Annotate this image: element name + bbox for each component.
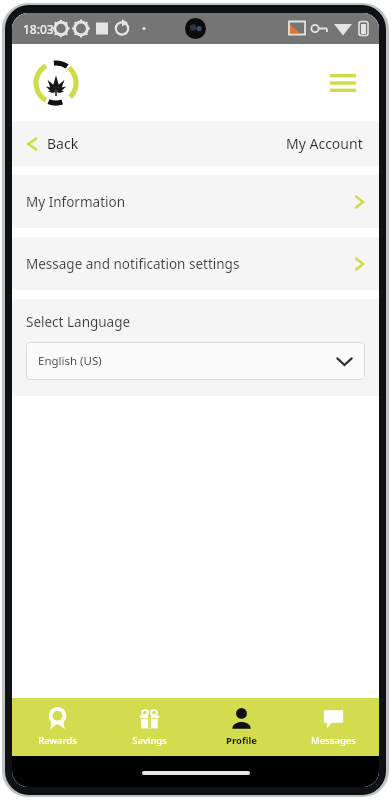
staticText: Message and notification settings: [26, 255, 240, 273]
staticText: Savings: [132, 734, 167, 747]
button[interactable]: Menu: [325, 65, 361, 101]
staticText: English (US): [38, 353, 102, 369]
button[interactable]: Rewards: [12, 698, 103, 756]
button[interactable]: Savings: [103, 698, 195, 756]
button[interactable]: Back: [26, 121, 79, 166]
staticText: Select Language: [26, 313, 131, 331]
staticText: Profile: [226, 734, 257, 747]
staticText: My Account: [286, 134, 363, 153]
staticText: Back: [47, 134, 79, 153]
button[interactable]: My Information: [12, 175, 379, 228]
button[interactable]: Home logo: [32, 59, 80, 107]
button[interactable]: English (US): [26, 342, 365, 380]
button[interactable]: Message and notification settings: [12, 237, 379, 290]
staticText: Rewards: [38, 734, 77, 747]
button[interactable]: Profile: [195, 698, 287, 756]
button[interactable]: Messages: [287, 698, 379, 756]
staticText: 18:03: [23, 21, 54, 37]
staticText: My Information: [26, 193, 126, 211]
staticText: Messages: [311, 734, 356, 747]
